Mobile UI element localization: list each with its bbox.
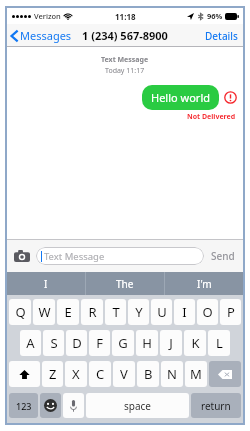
staticText: T [112, 303, 120, 321]
button[interactable]: Messages [7, 25, 76, 46]
staticText: H [142, 334, 152, 352]
button[interactable]: L [208, 330, 230, 356]
staticText: S [50, 334, 58, 352]
button[interactable]: Send [208, 244, 238, 268]
staticText: L [216, 334, 223, 352]
button[interactable]: B [137, 361, 159, 387]
staticText: U [157, 303, 167, 321]
button[interactable]: P [220, 299, 241, 325]
button[interactable]: Not delivered [224, 91, 237, 104]
staticText: F [96, 334, 103, 352]
staticText: X [72, 365, 80, 383]
button[interactable]: M [185, 361, 207, 387]
staticText: Hello world [151, 90, 210, 105]
staticText: P [227, 303, 235, 321]
button[interactable]: X [65, 361, 87, 387]
button[interactable]: return [191, 393, 241, 418]
button[interactable]: F [89, 330, 110, 356]
staticText: I'm [197, 277, 212, 291]
button[interactable]: Details [200, 25, 243, 47]
staticText: The [116, 277, 134, 291]
button[interactable]: C [89, 361, 111, 387]
staticText: Y [135, 303, 143, 321]
button[interactable]: G [112, 330, 134, 356]
staticText: 11:18 [115, 11, 136, 22]
button[interactable]: V [113, 361, 135, 387]
button[interactable]: H [136, 330, 158, 356]
button[interactable]: T [105, 299, 126, 325]
staticText: Send [211, 249, 235, 263]
button[interactable]: Q [9, 299, 31, 325]
staticText: I [44, 277, 48, 291]
staticText: 96% [207, 11, 223, 21]
button[interactable]: J [160, 330, 182, 356]
staticText: space [124, 399, 151, 413]
staticText: J [169, 334, 173, 352]
button[interactable]: I [174, 299, 195, 325]
staticText: 123 [16, 400, 32, 412]
staticText: R [88, 303, 97, 321]
button[interactable]: N [161, 361, 183, 387]
staticText: O [202, 303, 213, 321]
button[interactable]: Backspace [209, 361, 241, 387]
button[interactable]: space [86, 393, 189, 418]
button[interactable]: Text Message [36, 247, 204, 265]
staticText: G [118, 334, 128, 352]
staticText: B [144, 365, 153, 383]
staticText: Q [15, 303, 26, 321]
button[interactable]: I [7, 272, 85, 295]
staticText: Messages [20, 28, 72, 43]
staticText: Details [205, 29, 238, 43]
staticText: Text Message [44, 250, 105, 263]
button[interactable]: Shift [9, 361, 40, 387]
button[interactable]: D [66, 330, 87, 356]
button[interactable]: O [197, 299, 218, 325]
staticText: K [191, 334, 200, 352]
staticText: M [190, 365, 202, 383]
button[interactable]: The [86, 272, 164, 295]
staticText: C [96, 365, 105, 383]
staticText: return [201, 399, 231, 413]
staticText: I [182, 303, 187, 321]
button[interactable]: Emoji [40, 393, 61, 418]
button[interactable]: 123 [9, 393, 38, 418]
button[interactable]: E [57, 299, 79, 325]
button[interactable]: U [151, 299, 172, 325]
staticText: W [38, 303, 51, 321]
staticText: Not Delivered [187, 112, 236, 122]
staticText: Today 11:17 [105, 66, 145, 76]
staticText: A [26, 334, 35, 352]
button[interactable]: W [33, 299, 55, 325]
button[interactable]: A [20, 330, 41, 356]
button[interactable]: I'm [165, 272, 243, 295]
button[interactable]: S [43, 330, 64, 356]
staticText: Z [49, 365, 57, 383]
staticText: Verizon [34, 11, 61, 21]
button[interactable]: Hello world [142, 85, 219, 110]
button[interactable]: Dictation [63, 393, 84, 418]
staticText: N [167, 365, 177, 383]
button[interactable]: Y [128, 299, 149, 325]
button[interactable]: R [81, 299, 103, 325]
button[interactable]: Z [42, 361, 63, 387]
button[interactable]: K [184, 330, 206, 356]
staticText: Text Message [101, 55, 149, 65]
staticText: 1 (234) 567-8900 [82, 28, 168, 43]
staticText: E [64, 303, 72, 321]
button[interactable]: Camera [12, 246, 32, 266]
staticText: D [72, 334, 82, 352]
staticText: V [120, 365, 128, 383]
